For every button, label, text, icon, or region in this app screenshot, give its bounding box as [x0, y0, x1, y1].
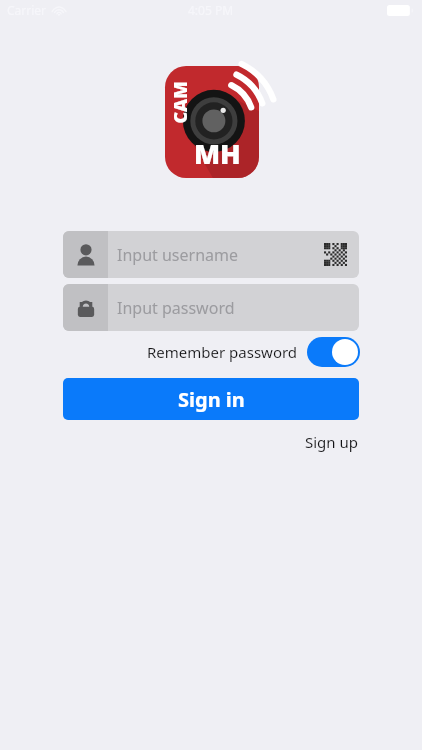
staticText: Input username	[117, 244, 239, 266]
staticText: MH	[194, 135, 241, 172]
button[interactable]: Username	[63, 231, 359, 278]
other: Username	[63, 231, 108, 278]
button[interactable]: Scan QR code	[324, 243, 347, 266]
other: Password	[63, 284, 108, 331]
button[interactable]: Remember password	[307, 337, 360, 367]
staticText: CAM	[168, 81, 190, 124]
staticText: Input password	[117, 297, 235, 319]
button[interactable]: Password	[63, 284, 359, 331]
staticText: Remember password	[147, 342, 298, 362]
button[interactable]: Remember password	[0, 337, 360, 367]
staticText: Sign up	[305, 432, 358, 452]
button[interactable]: Sign up	[302, 429, 361, 455]
button[interactable]: Sign in	[63, 378, 359, 420]
staticText: Sign in	[178, 386, 245, 413]
